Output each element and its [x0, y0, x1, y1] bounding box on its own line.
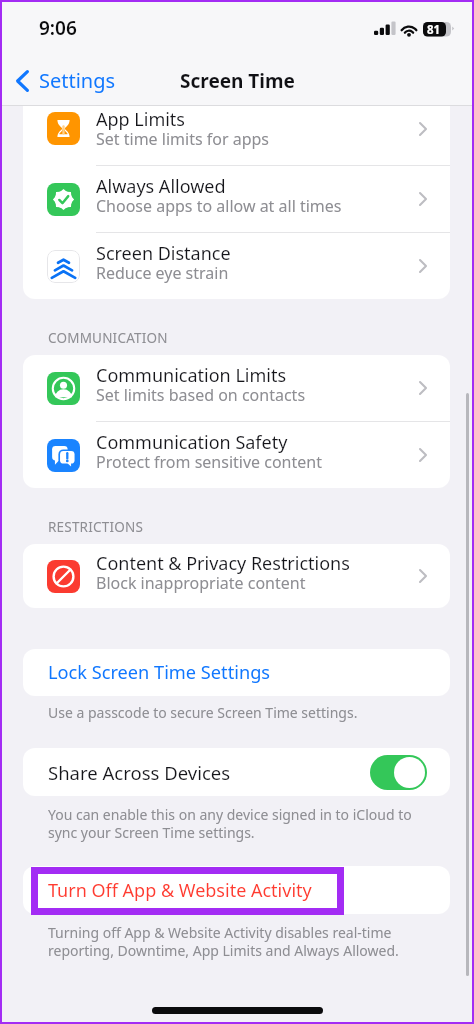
- staticText: Protect from sensitive content: [96, 451, 322, 473]
- button[interactable]: Back to Settings: [16, 67, 116, 94]
- button[interactable]: App Limits: [23, 106, 450, 166]
- staticText: Screen Time: [180, 68, 295, 94]
- staticText: 81: [427, 22, 441, 38]
- staticText: 9:06: [39, 15, 77, 41]
- staticText: Turn Off App & Website Activity: [48, 878, 312, 903]
- staticText: App Limits: [96, 107, 185, 132]
- button[interactable]: Turn Off App & Website Activity: [23, 866, 450, 914]
- staticText: Communication Safety: [96, 430, 288, 455]
- staticText: Communication Limits: [96, 363, 287, 388]
- staticText: Lock Screen Time Settings: [48, 660, 271, 685]
- staticText: Set time limits for apps: [96, 128, 270, 150]
- staticText: You can enable this on any device signed…: [48, 805, 432, 842]
- button[interactable]: Always Allowed: [23, 166, 450, 233]
- staticText: Settings: [39, 67, 116, 94]
- staticText: Set limits based on contacts: [96, 384, 306, 406]
- staticText: Content & Privacy Restrictions: [96, 551, 350, 576]
- staticText: Share Across Devices: [48, 760, 370, 785]
- staticText: Screen Distance: [96, 241, 231, 266]
- button[interactable]: Communication Safety: [23, 422, 450, 488]
- staticText: Choose apps to allow at all times: [96, 195, 342, 217]
- button[interactable]: Content & Privacy Restrictions: [23, 544, 450, 608]
- staticText: Block inappropriate content: [96, 572, 306, 594]
- staticText: Use a passcode to secure Screen Time set…: [48, 703, 358, 722]
- staticText: COMMUNICATION: [48, 329, 168, 347]
- staticText: Always Allowed: [96, 174, 226, 199]
- staticText: RESTRICTIONS: [48, 518, 144, 536]
- staticText: Reduce eye strain: [96, 262, 229, 284]
- button[interactable]: Communication Limits: [23, 355, 450, 422]
- button[interactable]: Screen Distance: [23, 233, 450, 299]
- button[interactable]: Share Across Devices: [23, 748, 450, 796]
- button[interactable]: Lock Screen Time Settings: [23, 649, 450, 696]
- staticText: Turning off App & Website Activity disab…: [48, 923, 422, 960]
